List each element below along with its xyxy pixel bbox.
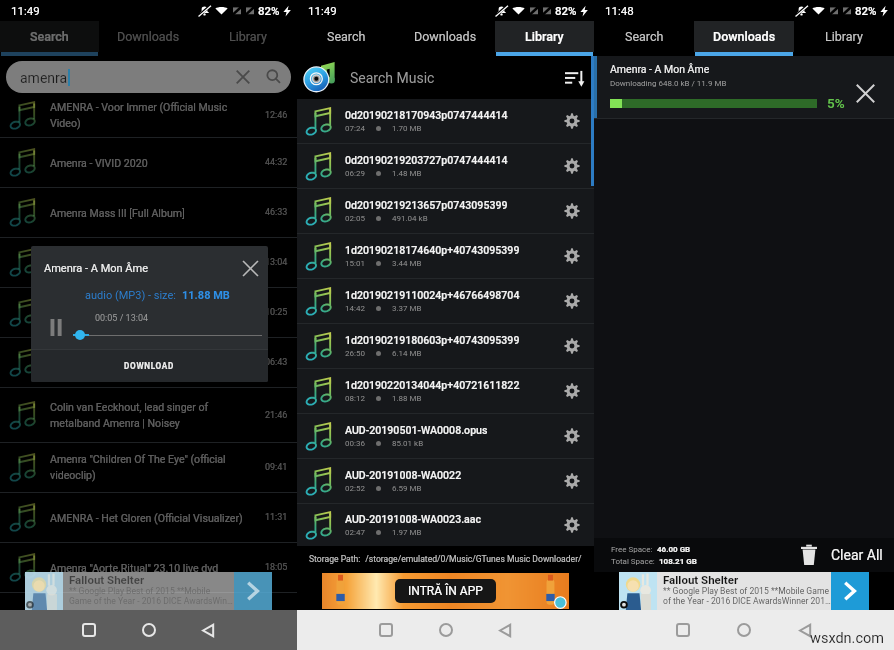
staticText: Library xyxy=(525,29,564,44)
staticText: 0d20190218170943p0747444414 xyxy=(345,109,508,121)
staticText: 21:46 xyxy=(265,410,288,421)
button[interactable]: Home xyxy=(727,613,761,647)
button[interactable]: Options xyxy=(554,283,590,319)
button[interactable]: Clear All xyxy=(799,541,883,569)
staticText: amenra xyxy=(20,70,68,86)
staticText: /storage/emulated/0/Music/GTunes Music D… xyxy=(361,554,582,564)
button[interactable]: Pause xyxy=(43,314,69,340)
button[interactable]: Options xyxy=(554,148,590,184)
button[interactable]: 1d20190219180603p+40743095399 xyxy=(297,324,594,368)
button[interactable]: Search xyxy=(259,63,287,91)
button[interactable]: DOWNLOAD xyxy=(31,350,268,382)
staticText: 1.48 MB xyxy=(392,169,422,178)
button[interactable]: Sort xyxy=(556,60,592,96)
button[interactable]: 0d20190219213657p0743095399 xyxy=(297,189,594,233)
staticText: 26:50 xyxy=(345,349,365,358)
staticText: 1.70 MB xyxy=(392,124,422,133)
button[interactable]: Options xyxy=(554,103,590,139)
staticText: Total Space: xyxy=(611,557,655,566)
button[interactable]: Downloads xyxy=(694,21,794,56)
staticText: 6.14 MB xyxy=(392,349,422,358)
button[interactable]: Options xyxy=(554,328,590,364)
staticText: 11:49 xyxy=(11,4,40,17)
button[interactable]: Fallout Shelter xyxy=(619,572,869,610)
button[interactable]: 0d20190218170943p0747444414 xyxy=(297,99,594,143)
button[interactable]: Options xyxy=(554,418,590,454)
button[interactable]: Downloads xyxy=(396,21,495,56)
button[interactable]: Close xyxy=(237,255,263,281)
button[interactable]: AUD-20191008-WA0023.aac xyxy=(297,504,594,546)
button[interactable]: Colin van Eeckhout, lead singer of metal… xyxy=(0,388,297,442)
button[interactable]: Recents xyxy=(72,613,106,647)
button[interactable]: AMENRA - Voor Immer (Official Music Vide… xyxy=(0,93,297,137)
button[interactable]: 1d20190220134044p+40721611822 xyxy=(297,369,594,413)
button[interactable]: Options xyxy=(554,373,590,409)
staticText: 10:25 xyxy=(265,307,288,318)
staticText: DOWNLOAD xyxy=(124,361,175,371)
button[interactable]: Amenra - Razoreater (Official) xyxy=(0,288,297,337)
button[interactable]: Options xyxy=(554,463,590,499)
staticText: AMENRA - Voor Immer (Official Music Vide… xyxy=(50,101,260,130)
staticText: 02:47 xyxy=(345,528,365,537)
button[interactable]: Home xyxy=(132,613,166,647)
button[interactable]: AUD-20190501-WA0008.opus xyxy=(297,414,594,458)
button[interactable]: Options xyxy=(554,238,590,274)
staticText: Downloading 648.0 kB / 11.9 MB xyxy=(610,79,727,88)
button[interactable]: Search xyxy=(0,21,99,56)
staticText: Search xyxy=(30,29,69,44)
button[interactable]: Amenra - VIVID 2020 xyxy=(0,138,297,187)
button[interactable]: Cancel download xyxy=(850,78,880,108)
button[interactable]: 1d20190218174640p+40743095399 xyxy=(297,234,594,278)
button[interactable]: AMENRA - Het Gloren (Official Visualizer… xyxy=(0,493,297,542)
button[interactable]: Back xyxy=(788,613,822,647)
button[interactable]: 0d20190219203727p0747444414 xyxy=(297,144,594,188)
button[interactable]: Options xyxy=(554,193,590,229)
staticText: 46:33 xyxy=(265,207,288,218)
staticText: Library xyxy=(825,29,863,44)
button[interactable]: Amenra - A Mon Âme xyxy=(0,238,297,287)
button[interactable]: Recents xyxy=(369,613,403,647)
button[interactable]: Clear xyxy=(229,63,257,91)
staticText: 00:36 xyxy=(345,439,365,448)
staticText: 11:48 xyxy=(605,4,634,17)
button[interactable]: Search xyxy=(297,21,396,56)
button[interactable]: Library xyxy=(794,21,894,56)
staticText: Downloads xyxy=(117,29,180,44)
button[interactable]: amenra xyxy=(6,61,291,93)
button[interactable]: INTRĂ ÎN APP xyxy=(322,573,569,609)
staticText: Colin van Eeckhout, lead singer of metal… xyxy=(50,401,260,430)
button[interactable]: Recents xyxy=(666,613,700,647)
button[interactable]: Amenra - A Mon Âme xyxy=(594,56,894,118)
button[interactable]: Back xyxy=(191,613,225,647)
staticText: INTRĂ ÎN APP xyxy=(408,584,483,598)
staticText: AUD-20191008-WA0023.aac xyxy=(345,513,482,525)
staticText: Search xyxy=(625,29,664,44)
button[interactable]: Amenra live at Roadburn xyxy=(0,338,297,387)
button[interactable]: Library xyxy=(198,21,297,56)
button[interactable]: Amenra "Aorte.Ritual" 23.10 live dvd xyxy=(0,543,297,592)
button[interactable]: Options xyxy=(554,507,590,543)
staticText: 12:46 xyxy=(265,110,288,121)
button[interactable]: Amenra "Children Of The Eye" (official v… xyxy=(0,443,297,492)
button[interactable]: Search Music xyxy=(297,56,594,99)
staticText: Amenra - A Mon Âme xyxy=(610,63,710,75)
button[interactable]: Back xyxy=(488,613,522,647)
staticText: Amenra live at Roadburn xyxy=(50,357,166,369)
staticText: 3.37 MB xyxy=(392,304,422,313)
staticText: AMENRA - Het Gloren (Official Visualizer… xyxy=(50,512,243,524)
button[interactable]: 1d20190219110024p+46766498704 xyxy=(297,279,594,323)
staticText: 09:41 xyxy=(265,462,288,473)
button[interactable]: Fallout Shelter xyxy=(25,572,272,610)
staticText: 1.88 MB xyxy=(392,394,422,403)
button[interactable]: Search xyxy=(594,21,694,56)
staticText: Search Music xyxy=(350,70,556,86)
button[interactable]: Library xyxy=(495,21,594,56)
staticText: 1d20190219180603p+40743095399 xyxy=(345,334,520,346)
staticText: Amenra - A Mon Âme xyxy=(50,257,151,269)
button[interactable]: Amenra Mass III [Full Album] xyxy=(0,188,297,237)
staticText: ** Google Play Best of 2015 **Mobile Gam… xyxy=(663,586,831,606)
button[interactable]: Downloads xyxy=(99,21,198,56)
staticText: Amenra - VIVID 2020 xyxy=(50,157,148,169)
button[interactable]: AUD-20191008-WA0022 xyxy=(297,459,594,503)
button[interactable]: Home xyxy=(429,613,463,647)
